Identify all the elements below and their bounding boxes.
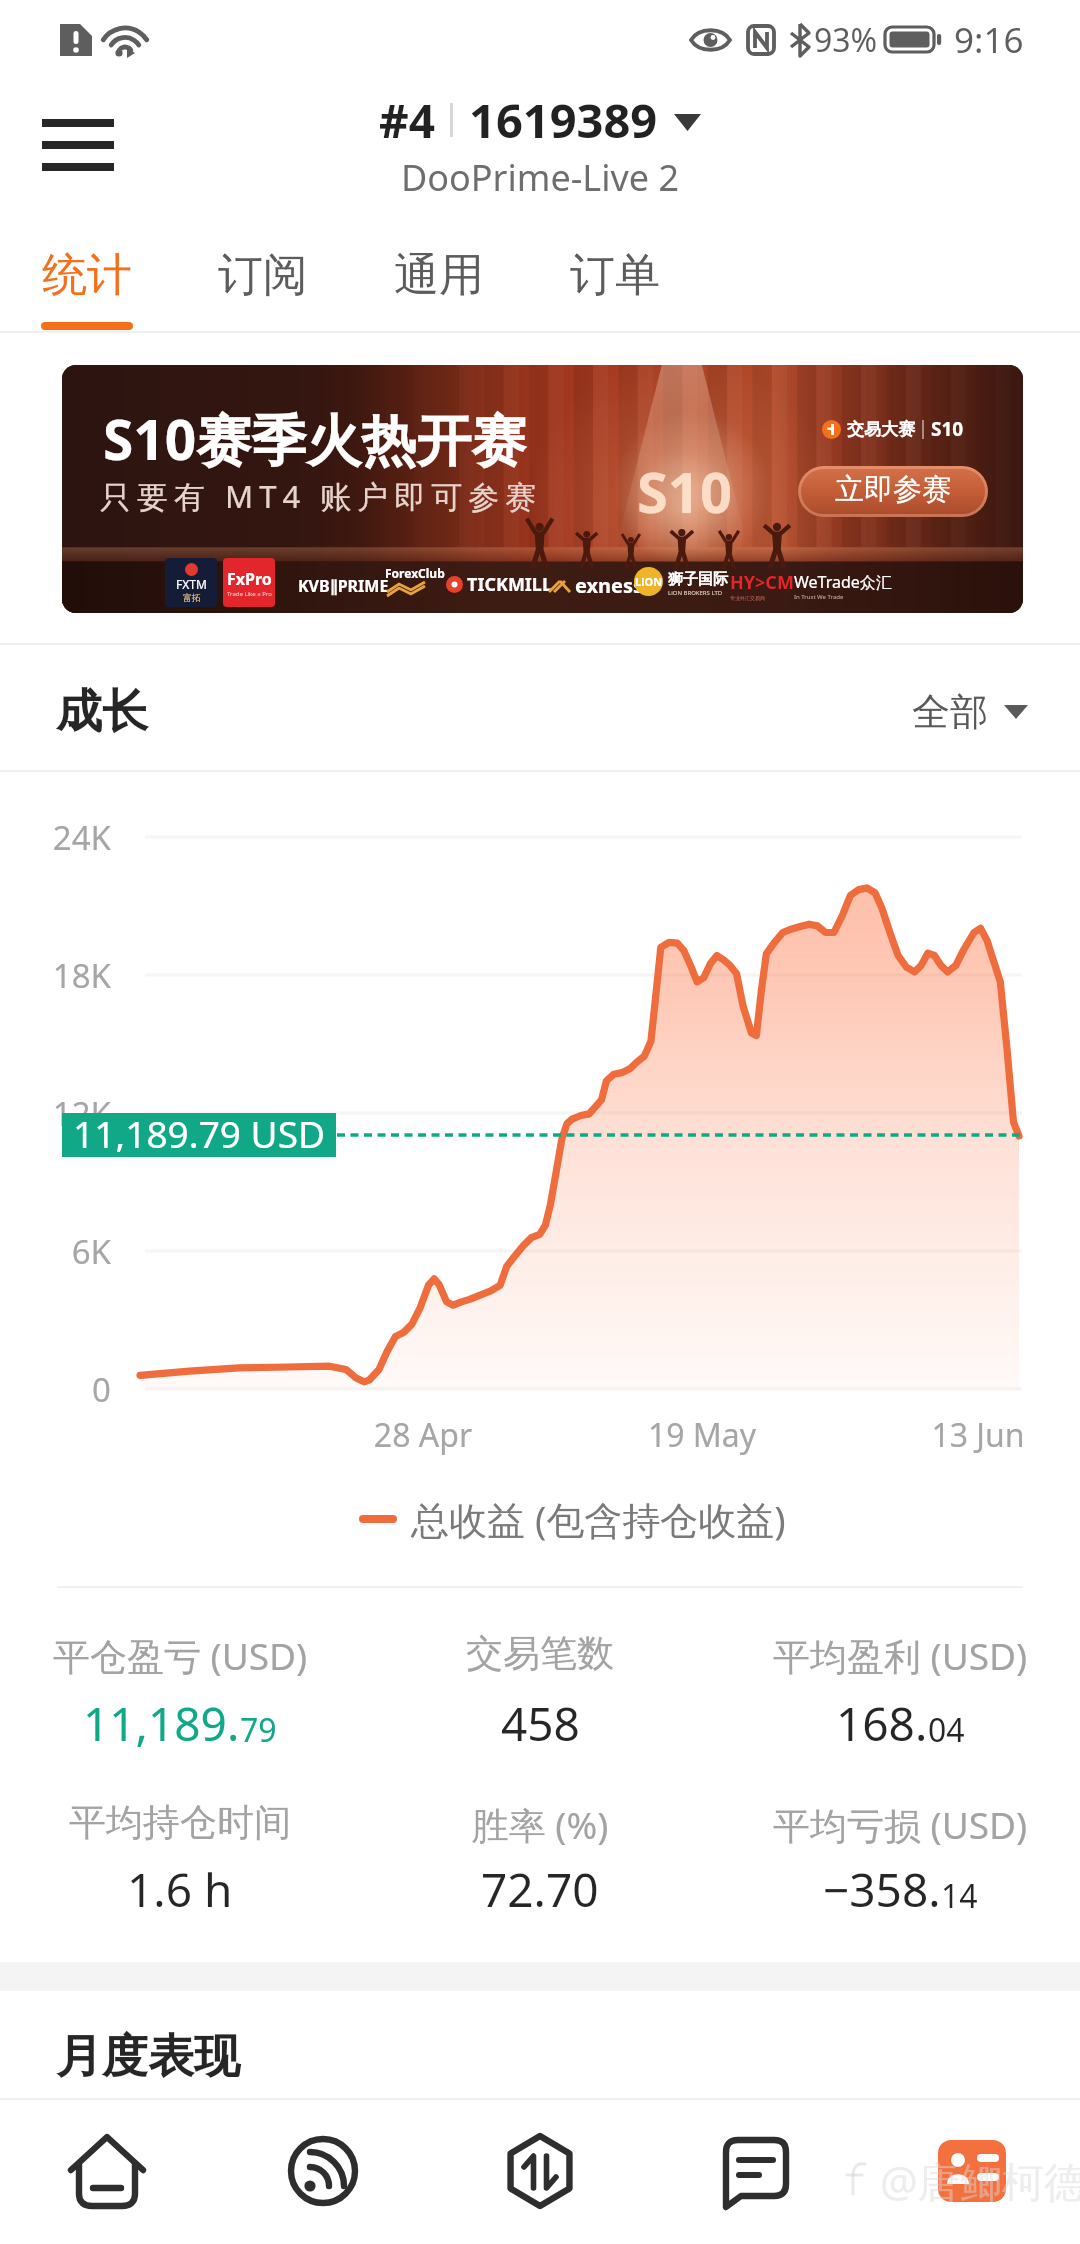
staticText: 总收益 (包含持仓收益) <box>411 1493 786 1545</box>
staticText: 月度表现 <box>56 2028 240 2086</box>
staticText: 13 Jun <box>868 1413 1080 1457</box>
staticText: 72.70 <box>481 1858 599 1921</box>
staticText: 0 <box>11 1367 111 1412</box>
staticText: DooPrime-Live 2 <box>401 153 680 202</box>
button[interactable]: Trade <box>432 2100 648 2244</box>
button[interactable]: S10赛季火热开赛 <box>62 365 1023 613</box>
staticText: 交易笔数 <box>340 1630 740 1677</box>
staticText: S10赛季火热开赛 <box>103 401 527 476</box>
staticText: 24K <box>11 815 111 860</box>
staticText: 19 May <box>592 1413 812 1457</box>
staticText: 平均亏损 (USD) <box>700 1799 1080 1850</box>
button[interactable]: 订阅 <box>195 235 330 331</box>
staticText: 6K <box>11 1229 111 1274</box>
button[interactable]: Profile <box>864 2100 1080 2244</box>
staticText: @唐鲫柯德 <box>880 2152 1080 2209</box>
button[interactable]: Home <box>0 2100 215 2244</box>
button[interactable]: 订单 <box>547 235 682 331</box>
staticText: exness <box>575 572 644 599</box>
staticText: 狮子国际 <box>668 570 728 589</box>
button[interactable]: 全部 <box>912 684 1028 740</box>
staticText: 胜率 (%) <box>340 1799 740 1850</box>
staticText: 9:16 <box>954 16 1024 64</box>
staticText: 14 <box>941 1874 978 1918</box>
staticText: 专业外汇交易商 <box>730 595 765 601</box>
staticText: 12K <box>11 1091 111 1136</box>
staticText: 11,189. <box>83 1692 240 1755</box>
button[interactable]: 通用 <box>371 235 506 331</box>
staticText: S10 <box>637 453 732 529</box>
staticText: LiON BROKERS LTD <box>668 589 723 597</box>
staticText: 平均盈利 (USD) <box>700 1630 1080 1681</box>
staticText: ForexClub <box>385 565 445 581</box>
button[interactable]: 立即参赛 <box>798 466 988 517</box>
staticText: 1619389 <box>469 88 658 152</box>
staticText: 1.6 h <box>127 1858 233 1921</box>
staticText: −358. <box>823 1858 941 1921</box>
staticText: 93% <box>814 18 878 62</box>
staticText: TICKMILL <box>467 572 552 597</box>
staticText: HY>CM <box>730 570 794 595</box>
staticText: 通用 <box>394 247 484 304</box>
staticText: KVB∥PRIME <box>298 575 389 597</box>
staticText: #4 <box>379 89 436 152</box>
button[interactable]: Messages <box>648 2100 864 2244</box>
staticText: LiON <box>635 574 663 589</box>
staticText: 只要有 MT4 账户即可参赛 <box>100 475 543 517</box>
button[interactable]: 统计 <box>19 235 154 331</box>
staticText: 168. <box>836 1692 928 1755</box>
staticText: In Trust We Trade <box>794 593 844 601</box>
staticText: 订阅 <box>218 247 308 304</box>
staticText: FXTM <box>176 576 207 592</box>
staticText: 订单 <box>570 247 660 304</box>
staticText: 全部 <box>912 688 988 736</box>
staticText: 28 Apr <box>313 1413 533 1457</box>
staticText: 04 <box>928 1708 965 1752</box>
staticText: 18K <box>11 953 111 998</box>
staticText: S10 <box>931 416 964 442</box>
staticText: 立即参赛 <box>835 471 951 508</box>
staticText: 统计 <box>42 247 132 304</box>
staticText: 458 <box>501 1692 580 1755</box>
staticText: 11,189.79 USD <box>73 1108 325 1152</box>
staticText: Trade Like a Pro <box>227 590 272 598</box>
staticText: 79 <box>240 1708 277 1752</box>
staticText: 平仓盈亏 (USD) <box>0 1630 380 1681</box>
button[interactable]: Signals <box>215 2100 431 2244</box>
staticText: 富拓 <box>183 592 201 603</box>
staticText: 交易大赛 <box>847 419 915 440</box>
button[interactable]: Menu <box>32 100 124 190</box>
staticText: FxPro <box>227 568 272 590</box>
staticText: WeTrade众汇 <box>794 571 892 593</box>
staticText: 成长 <box>56 683 148 741</box>
staticText: 平均持仓时间 <box>0 1799 380 1846</box>
button[interactable]: #4 <box>300 88 780 202</box>
